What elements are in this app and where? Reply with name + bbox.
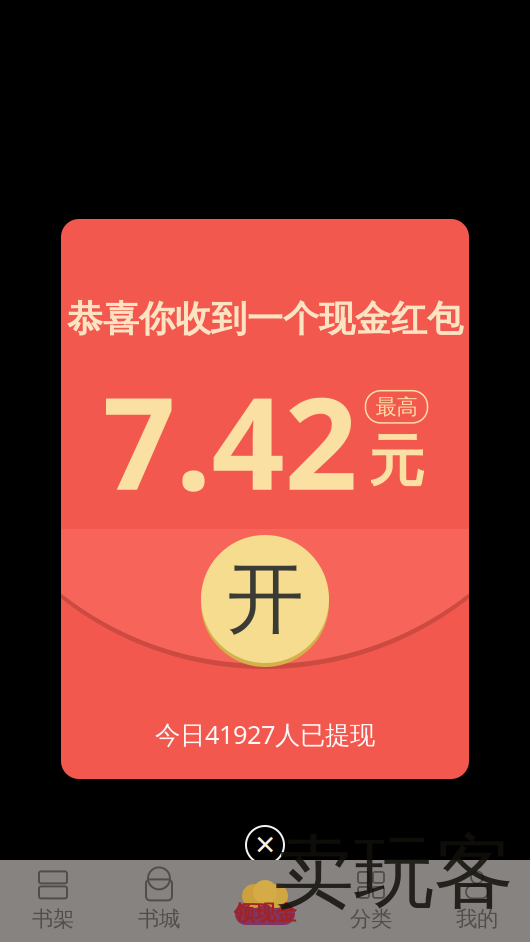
staticText: 新人现金礼包 (53, 536, 245, 575)
staticText: 分类 (350, 906, 392, 932)
button[interactable]: 书架 (0, 862, 106, 940)
staticText: 最高 88 元 (53, 360, 160, 391)
staticText: 7.42 (102, 355, 357, 525)
button[interactable]: 惊喜红包 (33, 241, 497, 495)
button[interactable]: 关闭 (241, 821, 289, 869)
staticText: 元 (368, 427, 424, 496)
staticText: 第3天 (234, 810, 296, 842)
staticText: 最高 (375, 394, 417, 420)
staticText: 领现金 (233, 900, 296, 926)
staticText: 我的 (456, 906, 498, 932)
button[interactable]: 分类 (318, 862, 424, 940)
staticText: 恭喜你收到一个现金红包 (67, 297, 463, 341)
staticText: 惊喜红包 (53, 264, 181, 303)
staticText: 书架 (32, 906, 74, 932)
staticText: 今日41927人已提现 (155, 717, 375, 751)
staticText: 卖玩客 (274, 824, 514, 922)
button[interactable]: 领现金 (212, 865, 318, 937)
staticText: 看2个视频可得 (53, 321, 211, 352)
staticText: 书城 (138, 906, 180, 932)
button[interactable]: 新人现金礼包 (33, 513, 497, 764)
staticText: 第5天 (428, 810, 490, 842)
button[interactable]: 书城 (106, 862, 212, 940)
staticText: 9.4 元 (53, 630, 114, 660)
button[interactable]: 开红包 (197, 529, 333, 669)
staticText: ✕ (254, 830, 276, 860)
staticText: 开 (226, 551, 303, 646)
staticText: 第4天 (331, 810, 393, 842)
button[interactable]: 我的 (424, 862, 530, 940)
staticText: 新人专享大额福利 (53, 593, 245, 622)
